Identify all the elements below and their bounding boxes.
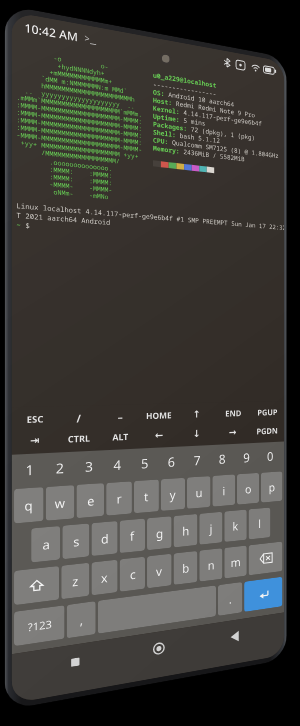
- staticText: :MMMM: :MMMM:: [16, 161, 112, 179]
- staticText: /: [76, 411, 82, 425]
- staticText: PGUP: [257, 407, 278, 418]
- button[interactable]: 7: [184, 445, 209, 475]
- button[interactable]: z: [61, 563, 89, 599]
- staticText: ESC: [27, 413, 43, 426]
- staticText: -o o-: [16, 47, 109, 70]
- button[interactable]: k: [224, 509, 247, 542]
- staticText: /MMMMMMMMMMMMMMMMMM/: [16, 145, 121, 165]
- button[interactable]: ⇥: [12, 429, 57, 452]
- button[interactable]: g: [147, 516, 172, 550]
- staticText: c: [130, 566, 136, 582]
- staticText: 8: [219, 450, 226, 468]
- button[interactable]: Enter: [244, 577, 282, 612]
- button[interactable]: l: [249, 507, 270, 539]
- staticText: q: [24, 496, 33, 514]
- button[interactable]: n: [199, 548, 222, 582]
- staticText: oNMm- -mMNo: [16, 183, 109, 200]
- button[interactable]: 5: [131, 448, 158, 478]
- button[interactable]: f: [120, 518, 145, 553]
- button[interactable]: ?123: [14, 605, 64, 646]
- staticText: +hydNNNNdyh+: [16, 54, 105, 77]
- staticText: w: [55, 494, 66, 512]
- button[interactable]: ALT: [100, 426, 140, 448]
- button[interactable]: v: [147, 554, 172, 588]
- button[interactable]: q: [14, 487, 43, 523]
- staticText: `dMM m:NMMMMMMN:m MMd`: [16, 69, 128, 95]
- button[interactable]: 2: [45, 452, 74, 484]
- button[interactable]: Delete: [249, 541, 282, 575]
- staticText: ↑: [193, 409, 201, 420]
- staticText: u: [195, 484, 203, 500]
- staticText: ←: [155, 429, 164, 442]
- staticText: n: [208, 557, 215, 573]
- button[interactable]: ,: [67, 601, 96, 638]
- staticText: 5: [141, 454, 149, 473]
- button[interactable]: HOME: [140, 405, 178, 426]
- staticText: r: [117, 490, 122, 507]
- button[interactable]: Home: [135, 630, 182, 667]
- staticText: hMMMMMMMMMMMMMMMMMMMMMMh: [16, 77, 135, 103]
- button[interactable]: p: [261, 471, 282, 503]
- staticText: -MMMM- -MMMM-: [16, 176, 112, 193]
- staticText: 4: [113, 455, 122, 474]
- button[interactable]: h: [173, 514, 197, 547]
- button[interactable]: m: [224, 545, 247, 578]
- button[interactable]: r: [106, 481, 132, 516]
- button[interactable]: t: [134, 479, 159, 513]
- button[interactable]: y: [161, 478, 185, 511]
- button[interactable]: Back: [212, 619, 256, 654]
- button[interactable]: s: [62, 523, 89, 559]
- button[interactable]: –: [100, 406, 140, 428]
- button[interactable]: c: [120, 556, 145, 592]
- button[interactable]: Shift: [14, 566, 59, 605]
- button[interactable]: .: [218, 582, 242, 616]
- staticText: k: [232, 518, 239, 534]
- button[interactable]: i: [212, 474, 235, 507]
- staticText: .mMMm`MMMMMMMMMMMMMMMMMMMM`mMMm.: [16, 92, 142, 118]
- button[interactable]: [98, 585, 216, 634]
- staticText: ~: [16, 220, 25, 230]
- button[interactable]: /: [57, 407, 100, 429]
- staticText: ,: [80, 611, 84, 628]
- staticText: 1: [25, 460, 35, 480]
- button[interactable]: 8: [210, 444, 234, 473]
- button[interactable]: u: [187, 476, 210, 509]
- button[interactable]: e: [76, 483, 104, 518]
- staticText: .. yyyyyyyyyyyyyyyyyyyy ..: [16, 84, 135, 110]
- button[interactable]: →: [215, 422, 250, 443]
- staticText: h: [182, 522, 190, 539]
- button[interactable]: 4: [103, 449, 131, 480]
- button[interactable]: ESC: [12, 408, 57, 431]
- button[interactable]: a: [31, 526, 60, 563]
- button[interactable]: Recents: [49, 643, 101, 682]
- staticText: a: [42, 535, 50, 553]
- staticText: –: [118, 410, 123, 424]
- button[interactable]: ↓: [178, 424, 215, 445]
- button[interactable]: PGDN: [250, 421, 284, 441]
- button[interactable]: CTRL: [57, 428, 100, 450]
- button[interactable]: ↑: [178, 404, 215, 425]
- button[interactable]: 0: [258, 442, 281, 470]
- button[interactable]: ←: [140, 425, 178, 446]
- button[interactable]: w: [46, 485, 74, 521]
- button[interactable]: 6: [158, 446, 184, 476]
- staticText: CTRL: [68, 432, 90, 446]
- staticText: z: [72, 572, 79, 589]
- button[interactable]: x: [91, 559, 118, 595]
- button[interactable]: 1: [15, 453, 45, 486]
- staticText: END: [225, 408, 241, 419]
- staticText: ----------------- Android 10 aarch64 Red…: [153, 70, 279, 174]
- staticText: t: [144, 488, 149, 504]
- button[interactable]: d: [91, 521, 118, 556]
- button[interactable]: 9: [234, 443, 258, 472]
- staticText: v: [156, 562, 163, 579]
- staticText: ALT: [112, 431, 129, 444]
- button[interactable]: END: [215, 404, 250, 424]
- staticText: ↓: [193, 428, 201, 440]
- button[interactable]: 3: [74, 450, 103, 482]
- button[interactable]: PGUP: [250, 403, 284, 422]
- staticText: PGDN: [256, 425, 278, 437]
- button[interactable]: j: [199, 512, 222, 545]
- button[interactable]: b: [173, 551, 197, 585]
- button[interactable]: o: [237, 473, 259, 505]
